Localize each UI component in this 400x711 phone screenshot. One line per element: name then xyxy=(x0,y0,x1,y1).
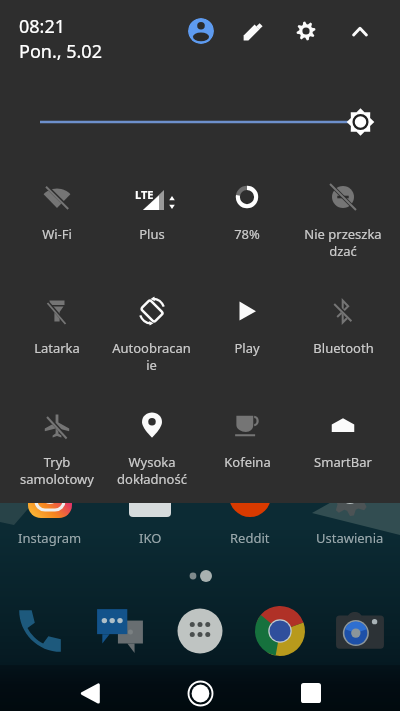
staticText: Ustawienia xyxy=(316,529,384,547)
button[interactable]: Autoobracan ie xyxy=(104,296,199,392)
staticText: Nie przeszka dzać xyxy=(304,225,382,260)
button[interactable]: Tryb samolotowy xyxy=(9,410,104,506)
staticText: Latarka xyxy=(34,339,80,357)
button[interactable]: Wi-Fi xyxy=(9,182,104,278)
staticText: Wysoka dokładność xyxy=(117,453,187,488)
button[interactable]: Bluetooth xyxy=(295,296,391,392)
staticText: 08:21 xyxy=(19,14,66,39)
button[interactable]: Back xyxy=(70,673,110,711)
staticText: Play xyxy=(234,339,260,357)
staticText: LTE xyxy=(135,187,154,202)
button[interactable]: Brightness xyxy=(0,103,400,141)
staticText: Plus xyxy=(139,225,165,243)
button[interactable]: SmartBar xyxy=(295,410,391,506)
button[interactable]: Latarka xyxy=(9,296,104,392)
button[interactable]: camera xyxy=(320,606,400,656)
button[interactable]: Recents xyxy=(291,673,331,711)
staticText: SmartBar xyxy=(314,453,372,471)
button[interactable]: Account xyxy=(188,18,214,44)
button[interactable]: messages xyxy=(80,606,160,656)
button[interactable]: Instagram xyxy=(0,503,100,553)
button[interactable]: Home xyxy=(180,673,220,711)
button[interactable]: Reddit xyxy=(200,503,300,553)
staticText: Autoobracan ie xyxy=(112,339,191,374)
staticText: Pon., 5.02 xyxy=(19,39,102,64)
button[interactable]: LTE xyxy=(104,182,199,278)
button[interactable]: IKO xyxy=(100,503,200,553)
staticText: Reddit xyxy=(230,529,270,547)
button[interactable]: Ustawienia xyxy=(300,503,400,553)
staticText: IKO xyxy=(139,529,162,547)
button[interactable]: Wysoka dokładność xyxy=(104,410,199,506)
button[interactable]: Edit xyxy=(241,19,265,43)
button[interactable]: Nie przeszka dzać xyxy=(295,182,391,278)
staticText: Wi-Fi xyxy=(42,225,72,243)
button[interactable]: Play xyxy=(199,296,295,392)
staticText: Bluetooth xyxy=(313,339,374,357)
button[interactable]: Kofeina xyxy=(199,410,295,506)
staticText: Kofeina xyxy=(224,453,271,471)
staticText: Tryb samolotowy xyxy=(20,453,94,488)
staticText: Instagram xyxy=(18,529,82,547)
staticText: 78% xyxy=(234,225,260,243)
button[interactable]: phone xyxy=(0,606,80,656)
button[interactable]: drawer xyxy=(160,606,240,656)
button[interactable]: Collapse xyxy=(348,19,372,43)
button[interactable]: Settings xyxy=(294,19,318,43)
button[interactable]: chrome xyxy=(240,606,320,656)
button[interactable]: 78% xyxy=(199,182,295,278)
